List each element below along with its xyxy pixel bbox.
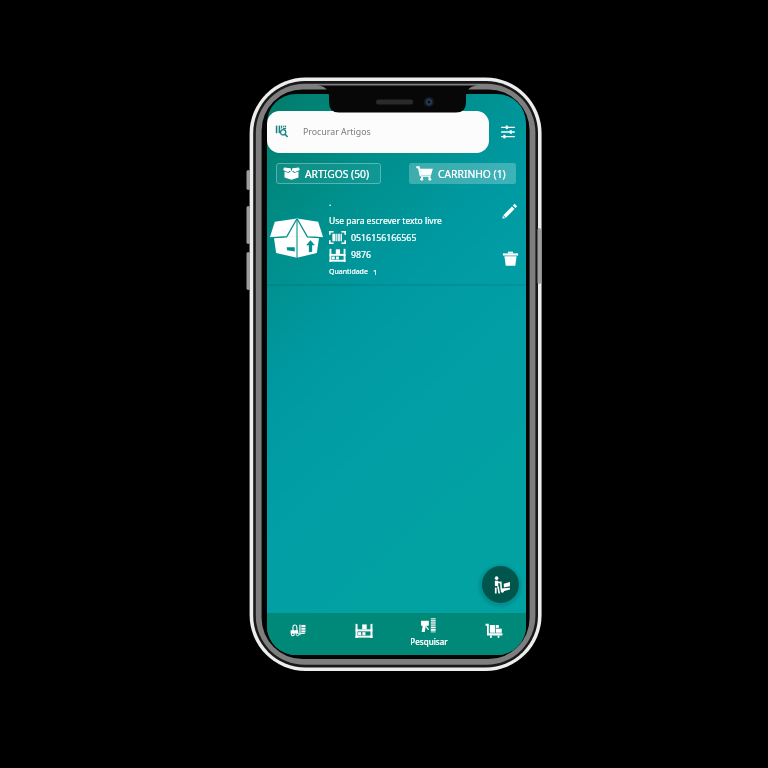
button[interactable]: ARTIGOS (50) (276, 163, 381, 184)
button[interactable]: Eliminar (497, 245, 523, 271)
staticText: Procurar Artigos (303, 126, 371, 138)
staticText: 1 (373, 267, 378, 277)
staticText: ARTIGOS (50) (305, 167, 370, 181)
button[interactable]: CARRINHO (1) (409, 163, 516, 184)
staticText: CARRINHO (1) (438, 167, 506, 181)
staticText: Pesquisar (410, 636, 448, 647)
button[interactable]: Filtros (489, 111, 526, 153)
staticText: 9876 (351, 249, 372, 261)
staticText: . (329, 197, 332, 209)
staticText: 0516156166565 (351, 232, 417, 244)
button[interactable]: Procurar Artigos (267, 111, 489, 153)
button[interactable]: Nova entrega (482, 566, 519, 603)
button[interactable]: Empilhador (267, 613, 331, 655)
button[interactable]: Editar (497, 198, 523, 224)
staticText: Use para escrever texto livre (329, 215, 442, 227)
staticText: Quantidade (329, 267, 368, 277)
button[interactable]: Armazem (331, 613, 396, 655)
button[interactable]: Pesquisar (396, 613, 461, 655)
button[interactable]: . (267, 192, 526, 286)
button[interactable]: Carrinho (461, 613, 526, 655)
